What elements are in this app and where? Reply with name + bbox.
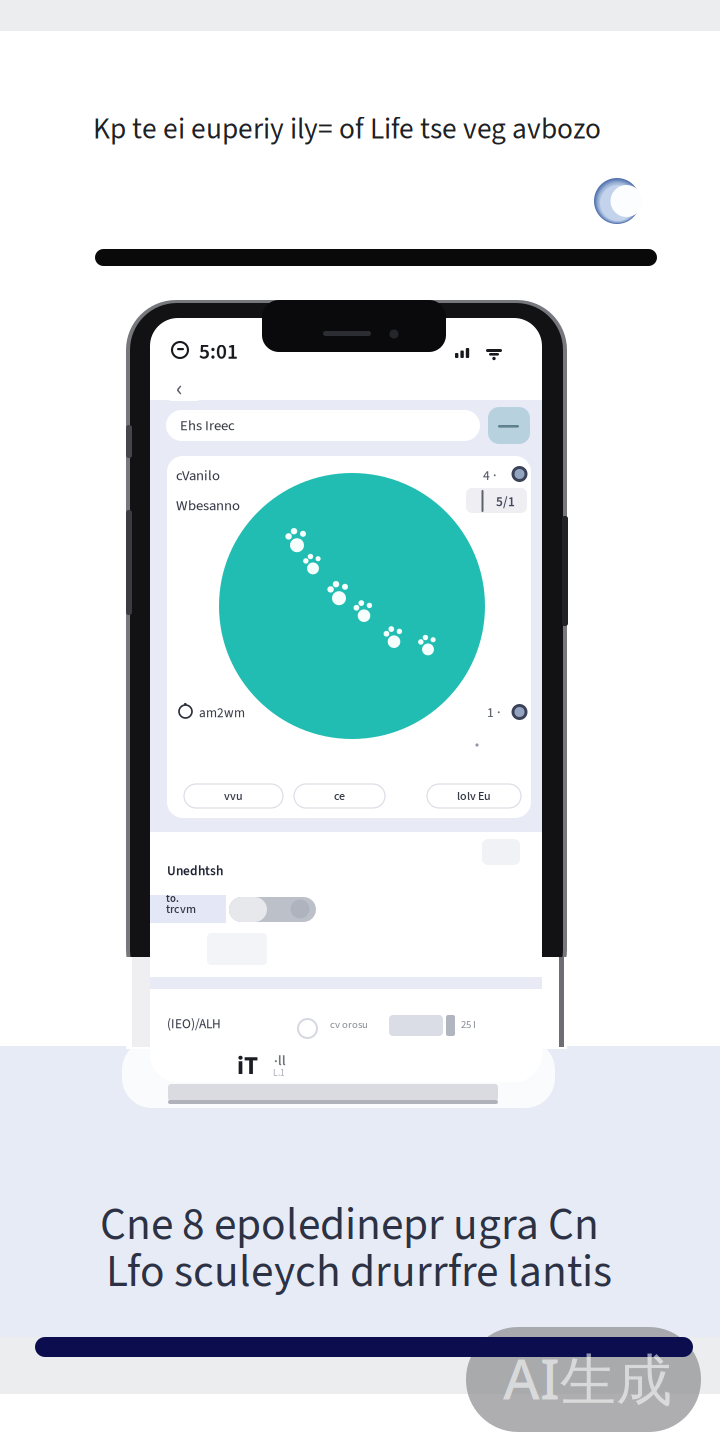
staticText: to. <box>166 891 179 906</box>
staticText: AI生成 <box>503 1341 672 1415</box>
staticText: lolv Eu <box>457 788 491 805</box>
button[interactable]: Back <box>166 373 202 401</box>
staticText: vvu <box>224 788 243 805</box>
staticText: Kp te ei euperiy ily= of Life tse veg av… <box>93 108 601 150</box>
staticText: ‹ <box>176 371 183 406</box>
button[interactable]: iT <box>230 1043 340 1087</box>
button[interactable]: lolv Eu <box>427 784 521 808</box>
staticText: Unedhtsh <box>167 861 223 880</box>
staticText: am2wm <box>199 703 245 722</box>
staticText: 25 I <box>461 1017 476 1032</box>
button[interactable]: vvu <box>184 784 283 808</box>
staticText: Lfo sculeych drurrfre lantis <box>106 1239 612 1304</box>
staticText: 4 · <box>483 466 496 485</box>
staticText: ·ll <box>274 1051 286 1070</box>
staticText: Wbesanno <box>176 495 240 516</box>
button[interactable]: Ehs Ireec <box>166 410 480 441</box>
staticText: 1 · <box>487 703 500 722</box>
button[interactable]: Filter <box>488 407 530 444</box>
staticText: ce <box>334 788 345 805</box>
button[interactable]: am2wm <box>167 696 531 732</box>
staticText: cVanilo <box>176 465 220 486</box>
button[interactable]: cVanilo <box>167 460 531 522</box>
staticText: Ehs Ireec <box>180 415 235 436</box>
staticText: Cne 8 epoledinepr ugra Cn <box>100 1192 599 1257</box>
staticText: 5/1 <box>496 492 515 511</box>
button[interactable]: (IEO)/ALH <box>150 1009 542 1047</box>
staticText: trcvm <box>166 901 196 918</box>
button[interactable]: to. <box>150 895 316 923</box>
staticText: iT <box>237 1048 258 1084</box>
staticText: cv orosu <box>330 1017 368 1032</box>
button[interactable]: ce <box>294 784 385 808</box>
staticText: L.1 <box>273 1066 285 1080</box>
staticText: 5:01 <box>199 337 238 367</box>
staticText: (IEO)/ALH <box>167 1014 221 1033</box>
